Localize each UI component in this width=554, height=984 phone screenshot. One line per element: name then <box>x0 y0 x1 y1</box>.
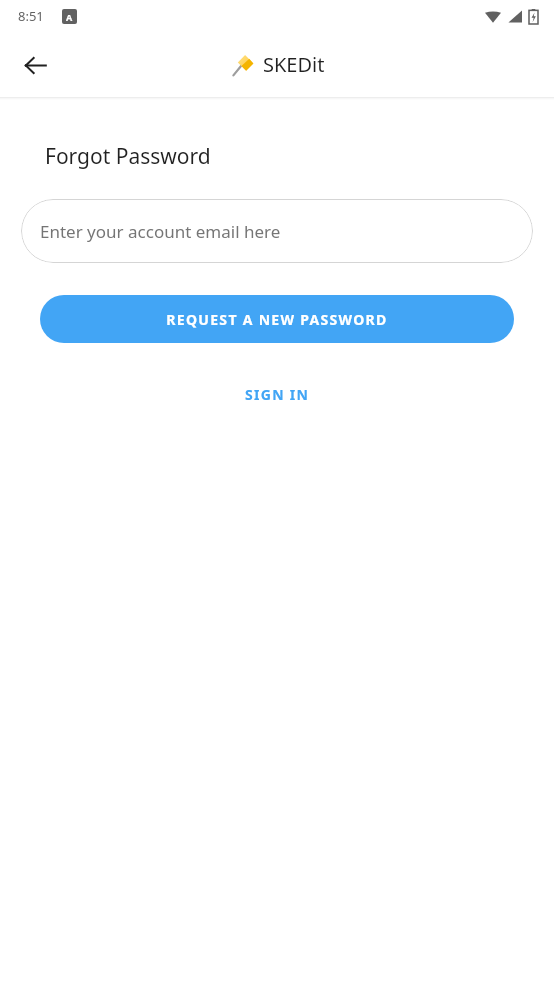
staticText: SIGN IN <box>245 385 310 404</box>
staticText: A <box>66 11 73 23</box>
button[interactable]: REQUEST A NEW PASSWORD <box>40 295 514 343</box>
button[interactable]: Back <box>12 42 58 88</box>
button[interactable]: SIGN IN <box>229 377 326 412</box>
staticText: REQUEST A NEW PASSWORD <box>166 310 388 329</box>
staticText: Forgot Password <box>45 142 211 171</box>
staticText: Enter your account email here <box>40 220 281 243</box>
button[interactable]: Enter your account email here <box>21 199 533 263</box>
staticText: SKEDit <box>263 51 325 78</box>
staticText: 8:51 <box>18 7 44 25</box>
